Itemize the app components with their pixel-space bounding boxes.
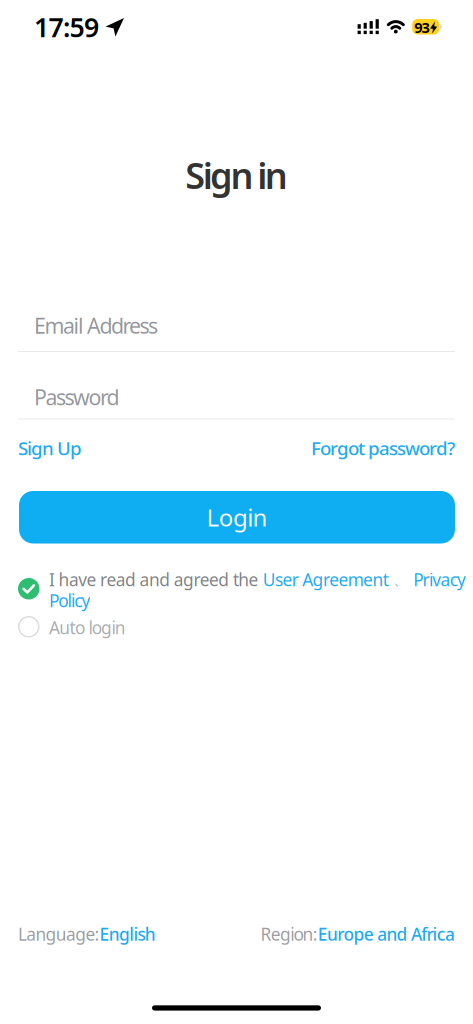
button[interactable]: English [100,922,156,945]
staticText: Login [207,501,267,533]
staticText: I have read and agreed the [49,568,263,591]
staticText: Policy [49,589,90,612]
button[interactable]: User Agreement [263,568,389,591]
staticText: Forgot password? [311,436,455,460]
button[interactable]: Policy [49,590,90,611]
staticText: Email Address [34,311,158,340]
staticText: 、 [389,570,413,589]
button[interactable]: Auto login [18,616,39,637]
staticText: 93 [414,17,430,37]
staticText: English [100,922,156,945]
staticText: Sign Up [18,436,82,460]
button[interactable]: Login [19,491,455,543]
staticText: Region: [261,922,318,945]
button[interactable]: Sign Up [18,437,82,459]
button[interactable]: Agree to terms [18,578,39,599]
staticText: Europe and Africa [318,922,455,945]
staticText: 17:59 [34,9,99,45]
staticText: Language: [18,922,100,945]
staticText: Sign in [185,151,288,199]
staticText: Password [34,383,119,411]
staticText: Auto login [49,616,126,639]
staticText: Privacy [413,568,466,591]
button[interactable]: Forgot password? [311,437,455,459]
button[interactable]: Privacy [413,568,466,591]
staticText: User Agreement [263,568,389,591]
button[interactable]: Europe and Africa [318,922,455,945]
